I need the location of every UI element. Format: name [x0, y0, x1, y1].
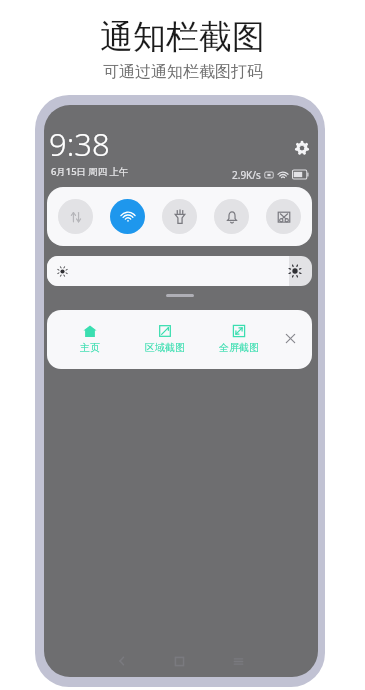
button[interactable]: Recents [227, 650, 249, 672]
button[interactable]: 全屏截图 [211, 317, 267, 362]
button[interactable]: Wi-Fi [110, 199, 145, 234]
staticText: 2.9K/s [232, 168, 261, 182]
staticText: 通知栏截图 [100, 16, 265, 58]
button[interactable]: Home [168, 650, 190, 672]
staticText: 全屏截图 [219, 341, 259, 354]
button[interactable]: Mobile data [58, 199, 93, 234]
staticText: 9:38 [49, 123, 110, 165]
button[interactable]: Flashlight [162, 199, 197, 234]
button[interactable]: Notifications [214, 199, 249, 234]
button[interactable]: Screenshot [266, 199, 301, 234]
button[interactable]: Close [279, 327, 301, 349]
button[interactable]: 主页 [62, 317, 118, 362]
staticText: 主页 [80, 341, 100, 354]
staticText: 区域截图 [145, 341, 185, 354]
button[interactable]: Settings [293, 139, 311, 157]
staticText: 6月15日 周四 上午 [51, 165, 129, 178]
staticText: 可通过通知栏截图打码 [103, 62, 263, 82]
button[interactable]: Brightness [47, 256, 312, 286]
button[interactable]: 区域截图 [137, 317, 193, 362]
